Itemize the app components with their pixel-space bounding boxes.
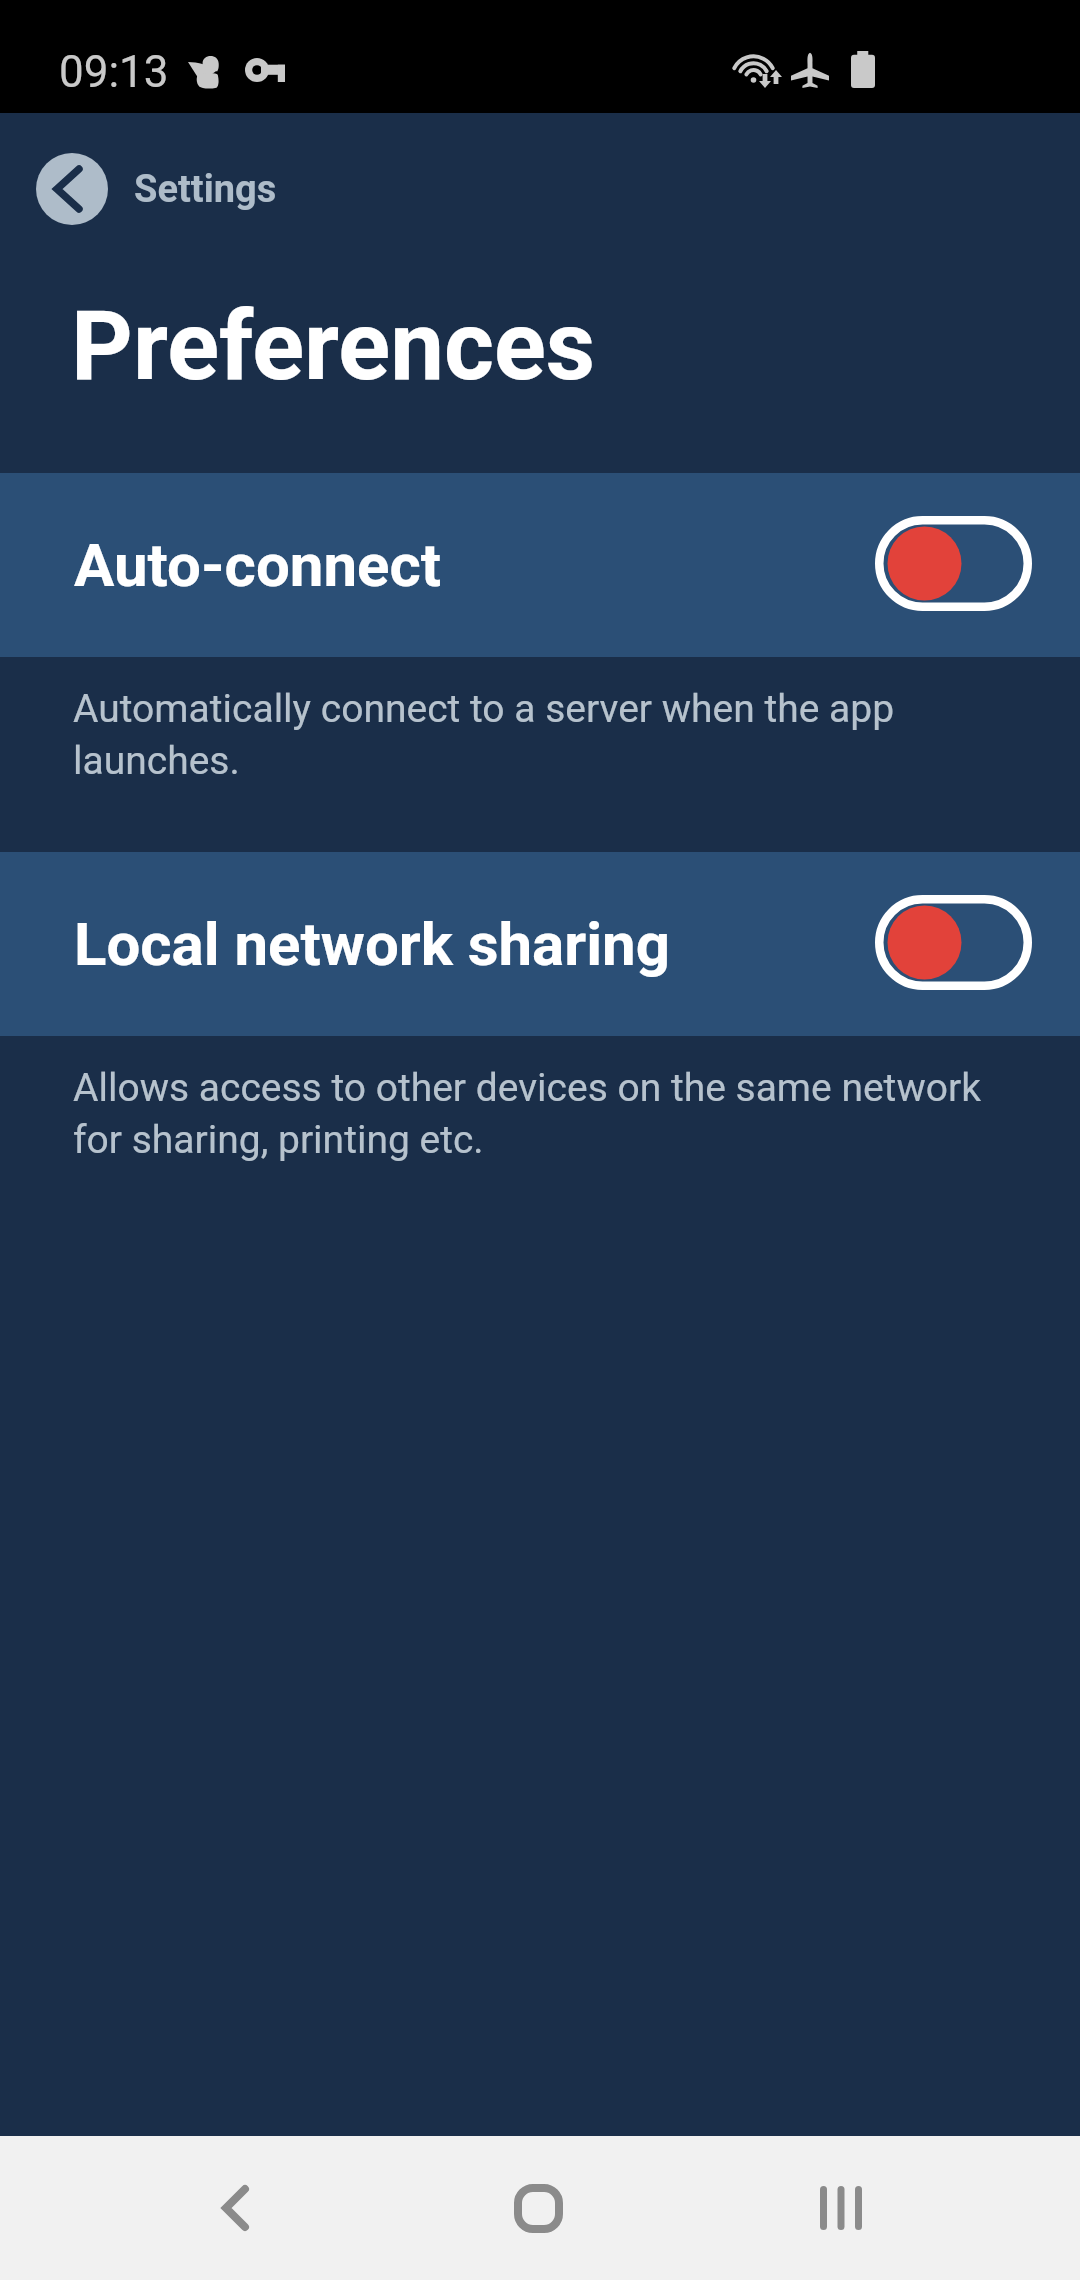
- staticText: Allows access to other devices on the sa…: [73, 1065, 1005, 1163]
- button[interactable]: Back: [36, 153, 108, 225]
- staticText: Local network sharing: [74, 909, 875, 979]
- staticText: 09:13: [59, 46, 169, 98]
- button[interactable]: Toggle Local network sharing: [875, 895, 1032, 990]
- button[interactable]: Local network sharing: [0, 852, 1080, 1036]
- staticText: Preferences: [71, 290, 596, 403]
- staticText: Automatically connect to a server when t…: [73, 686, 1005, 784]
- button[interactable]: Home: [454, 2136, 622, 2280]
- staticText: Settings: [134, 167, 277, 212]
- button[interactable]: Auto-connect: [0, 473, 1080, 657]
- button[interactable]: Recent apps: [757, 2136, 925, 2280]
- staticText: Auto-connect: [74, 530, 875, 600]
- button[interactable]: Back: [151, 2136, 319, 2280]
- button[interactable]: Toggle Auto-connect: [875, 516, 1032, 611]
